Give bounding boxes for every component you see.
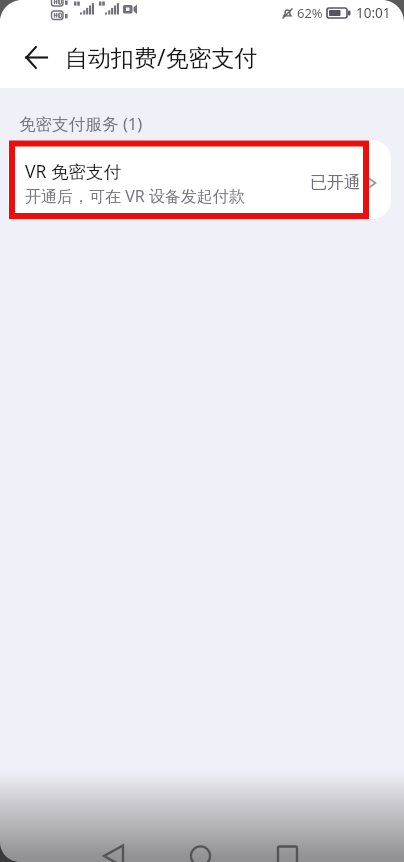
staticText: 10:01	[356, 4, 391, 22]
button[interactable]: VR 免密支付	[8, 140, 391, 219]
staticText: VR 免密支付	[25, 159, 121, 183]
staticText: 自动扣费/免密支付	[65, 41, 258, 72]
button[interactable]: Home	[134, 824, 268, 862]
staticText: 62%	[297, 4, 323, 22]
staticText: 免密支付服务 (1)	[19, 112, 143, 135]
button[interactable]: Back	[0, 824, 134, 862]
button[interactable]: Recents	[268, 824, 404, 862]
staticText: 开通后，可在 VR 设备发起付款	[25, 185, 245, 207]
button[interactable]: Back	[8, 29, 64, 85]
staticText: 已开通	[310, 172, 361, 193]
